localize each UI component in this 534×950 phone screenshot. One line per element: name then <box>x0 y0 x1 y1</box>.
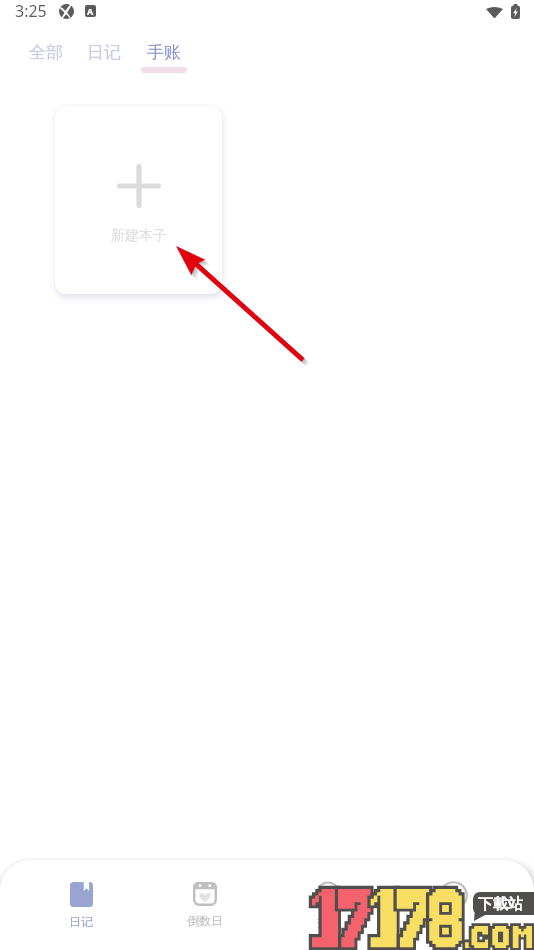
staticText: 我的 <box>441 916 465 931</box>
button[interactable]: 手账 <box>133 42 199 74</box>
staticText: 3:25 <box>15 0 47 22</box>
staticText: 倒数日 <box>187 913 223 928</box>
button[interactable]: 倒数日 <box>143 882 267 928</box>
button[interactable]: 日记 <box>19 882 143 929</box>
button[interactable]: 探索 <box>267 882 391 929</box>
staticText: 探索 <box>317 914 341 929</box>
staticText: 手账 <box>147 42 181 63</box>
button[interactable]: 全部 <box>17 42 75 74</box>
staticText: 日记 <box>69 914 93 929</box>
button[interactable]: 日记 <box>75 42 133 74</box>
button[interactable]: 我的 <box>391 882 515 931</box>
staticText: 日记 <box>87 42 121 63</box>
button[interactable]: 新建本子 <box>55 106 222 294</box>
staticText: 全部 <box>29 42 63 63</box>
staticText: A <box>87 5 94 17</box>
staticText: 下載站 <box>478 895 523 914</box>
staticText: 新建本子 <box>111 227 167 245</box>
